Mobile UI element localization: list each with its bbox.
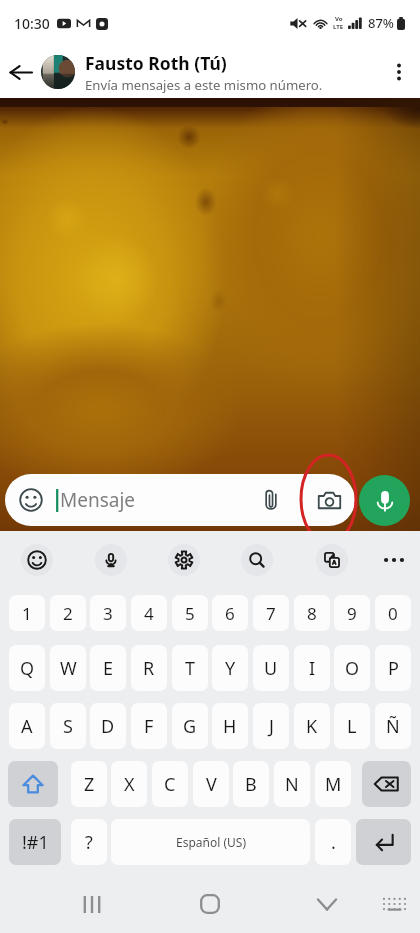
button[interactable]: Ñ — [375, 703, 411, 749]
button[interactable]: Translate — [316, 544, 348, 576]
button[interactable]: Back — [3, 55, 37, 89]
staticText: J — [269, 714, 274, 739]
button[interactable]: Recents — [68, 880, 116, 928]
button[interactable]: W — [50, 645, 86, 691]
staticText: 7 — [266, 602, 276, 625]
staticText: C — [164, 772, 176, 797]
staticText: . — [331, 830, 336, 855]
button[interactable]: More options — [378, 51, 420, 93]
button[interactable]: S — [50, 703, 86, 749]
staticText: 2 — [63, 602, 73, 625]
button[interactable]: Voice message — [359, 475, 410, 526]
button[interactable]: Emoji — [18, 487, 44, 513]
button[interactable]: ? — [71, 819, 107, 865]
button[interactable]: More keyboard options — [376, 542, 412, 578]
staticText: W — [60, 656, 77, 681]
staticText: I — [309, 656, 316, 681]
button[interactable]: Switch keyboard — [370, 880, 418, 928]
button[interactable]: Español (US) — [111, 819, 310, 865]
staticText: L — [347, 714, 357, 739]
button[interactable]: !#1 — [9, 819, 61, 865]
staticText: K — [306, 714, 318, 739]
button[interactable]: Emoji — [5, 474, 355, 526]
staticText: F — [144, 714, 154, 739]
staticText: Ñ — [386, 714, 400, 739]
button[interactable]: F — [131, 703, 167, 749]
button[interactable]: Hide keyboard — [303, 880, 351, 928]
button[interactable]: P — [375, 645, 411, 691]
staticText: E — [103, 656, 114, 681]
button[interactable]: Backspace — [362, 761, 411, 807]
button[interactable]: C — [152, 761, 188, 807]
button[interactable]: Search — [241, 544, 273, 576]
button[interactable]: Q — [9, 645, 45, 691]
button[interactable]: O — [334, 645, 370, 691]
button[interactable]: Shift — [8, 761, 58, 807]
staticText: Mensaje — [60, 487, 136, 513]
button[interactable]: Voice input — [95, 544, 127, 576]
staticText: 87% — [368, 14, 394, 32]
staticText: O — [345, 656, 360, 681]
button[interactable]: 1 — [9, 595, 45, 631]
button[interactable]: L — [334, 703, 370, 749]
staticText: B — [245, 772, 257, 797]
button[interactable]: Emoji — [21, 544, 53, 576]
button[interactable]: T — [172, 645, 208, 691]
button[interactable]: Profile photo — [41, 55, 75, 89]
button[interactable]: Home — [186, 880, 234, 928]
staticText: R — [143, 656, 155, 681]
button[interactable]: 0 — [375, 595, 411, 631]
button[interactable]: Enter — [356, 819, 411, 865]
staticText: P — [388, 656, 399, 681]
staticText: V — [206, 772, 217, 797]
button[interactable]: Z — [71, 761, 107, 807]
button[interactable]: 2 — [50, 595, 86, 631]
staticText: S — [63, 714, 73, 739]
button[interactable]: V — [193, 761, 229, 807]
button[interactable]: X — [111, 761, 147, 807]
button[interactable]: 8 — [294, 595, 330, 631]
button[interactable]: . — [315, 819, 351, 865]
staticText: 3 — [103, 602, 113, 625]
staticText: LTE — [333, 23, 344, 31]
button[interactable]: R — [131, 645, 167, 691]
staticText: G — [183, 714, 197, 739]
button[interactable]: 7 — [253, 595, 289, 631]
button[interactable]: M — [315, 761, 351, 807]
staticText: Q — [20, 656, 35, 681]
staticText: M — [325, 772, 342, 797]
staticText: N — [285, 772, 299, 797]
staticText: 1 — [22, 602, 32, 625]
staticText: Fausto Roth (Tú) — [85, 51, 227, 75]
button[interactable]: A — [9, 703, 45, 749]
button[interactable]: E — [90, 645, 126, 691]
staticText: Español (US) — [176, 834, 246, 850]
staticText: 8 — [307, 602, 317, 625]
staticText: Y — [225, 656, 236, 681]
staticText: U — [264, 656, 278, 681]
button[interactable]: D — [90, 703, 126, 749]
staticText: H — [223, 714, 237, 739]
button[interactable]: I — [294, 645, 330, 691]
button[interactable]: Y — [212, 645, 248, 691]
staticText: !#1 — [22, 830, 49, 855]
button[interactable]: J — [253, 703, 289, 749]
staticText: 10:30 — [14, 14, 50, 33]
staticText: Vo — [335, 15, 343, 23]
button[interactable]: 5 — [172, 595, 208, 631]
button[interactable]: G — [172, 703, 208, 749]
staticText: Z — [84, 772, 95, 797]
button[interactable]: Attach — [258, 487, 284, 513]
button[interactable]: Settings — [168, 544, 200, 576]
button[interactable]: 9 — [334, 595, 370, 631]
button[interactable]: K — [294, 703, 330, 749]
button[interactable]: H — [212, 703, 248, 749]
button[interactable]: N — [274, 761, 310, 807]
button[interactable]: U — [253, 645, 289, 691]
button[interactable]: Camera — [315, 486, 343, 514]
staticText: A — [21, 714, 33, 739]
button[interactable]: 4 — [131, 595, 167, 631]
button[interactable]: 3 — [90, 595, 126, 631]
button[interactable]: 6 — [212, 595, 248, 631]
button[interactable]: B — [233, 761, 269, 807]
